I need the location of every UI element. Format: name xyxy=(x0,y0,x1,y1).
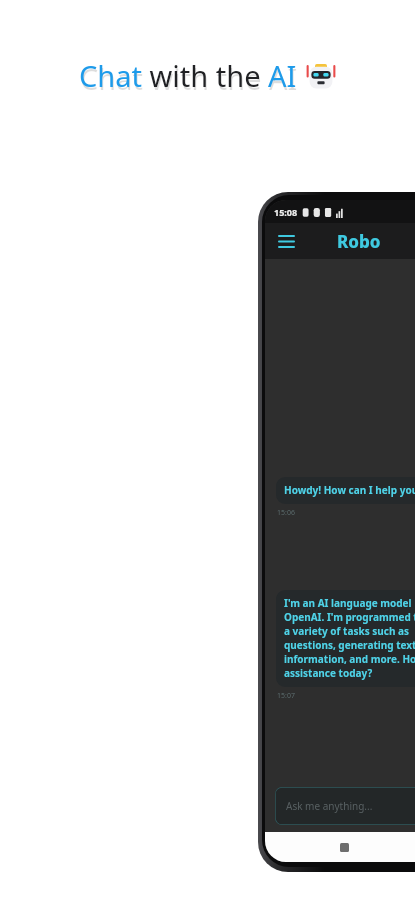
staticText: Chat with the AI xyxy=(79,56,297,95)
staticText: Ask me anything... xyxy=(286,799,373,813)
staticText: 15:06 xyxy=(277,508,295,518)
button[interactable]: Recent apps xyxy=(333,836,355,858)
staticText: Howdy! How can I help you? xyxy=(284,483,415,497)
button[interactable]: Open navigation menu xyxy=(271,226,301,256)
staticText: questions, generating text, providing xyxy=(284,638,415,652)
staticText: information, and more. How can I be of xyxy=(284,652,415,666)
staticText: Robo xyxy=(337,230,381,253)
staticText: Chat with the AI xyxy=(80,59,298,98)
button[interactable]: Ask me anything... xyxy=(275,787,415,825)
button[interactable]: Howdy! How can I help you? xyxy=(276,477,415,504)
staticText: 15:07 xyxy=(277,691,295,701)
staticText: assistance today? xyxy=(284,666,373,680)
staticText: OpenAI. I'm programmed to perform xyxy=(284,610,415,624)
staticText: a variety of tasks such as answering xyxy=(284,624,415,638)
staticText: I'm an AI language model created by xyxy=(284,596,415,610)
button[interactable]: I'm an AI language model created by xyxy=(276,590,415,687)
staticText: 15:08 xyxy=(274,206,298,218)
